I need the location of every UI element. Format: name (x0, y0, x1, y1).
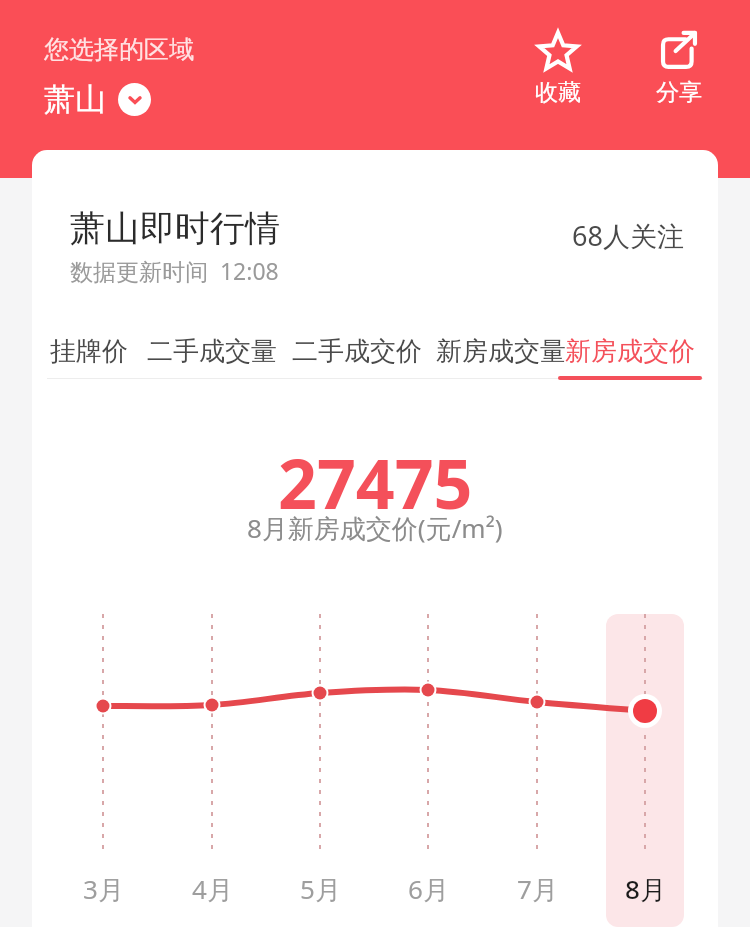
staticText: 27475 (278, 436, 473, 529)
staticText: 挂牌价 (50, 335, 128, 368)
staticText: 二手成交价 (292, 335, 422, 368)
button[interactable]: 新房成交价 (560, 322, 700, 380)
staticText: 分享 (656, 78, 702, 107)
button[interactable]: 8月 (609, 867, 681, 911)
button[interactable]: 5月 (284, 867, 356, 911)
button[interactable]: 收藏 (508, 26, 608, 111)
staticText: 6月 (408, 871, 449, 907)
staticText: 数据更新时间 12:08 (70, 255, 279, 286)
staticText: 3月 (83, 871, 124, 907)
staticText: 萧山 (44, 80, 106, 119)
button[interactable]: 新房成交量 (436, 322, 566, 380)
button[interactable]: 二手成交量 (147, 322, 277, 380)
button[interactable]: 7月 (501, 867, 573, 911)
staticText: 68人关注 (572, 217, 684, 254)
staticText: 新房成交量 (436, 335, 566, 368)
button[interactable]: 6月 (392, 867, 464, 911)
button[interactable]: 挂牌价 (47, 322, 131, 380)
button[interactable]: 4月 (176, 867, 248, 911)
staticText: 您选择的区域 (44, 34, 194, 65)
button[interactable]: 分享 (629, 26, 729, 111)
staticText: 5月 (300, 871, 341, 907)
staticText: 二手成交量 (147, 335, 277, 368)
staticText: 收藏 (535, 78, 581, 107)
staticText: 萧山即时行情 (70, 206, 280, 250)
staticText: 8月新房成交价(元/m²) (247, 510, 503, 546)
staticText: 新房成交价 (565, 335, 695, 368)
button[interactable]: 3月 (67, 867, 139, 911)
staticText: 8月 (625, 871, 666, 907)
button[interactable]: 二手成交价 (292, 322, 422, 380)
staticText: 4月 (192, 871, 233, 907)
button[interactable]: 萧山 (44, 80, 157, 119)
staticText: 7月 (517, 871, 558, 907)
